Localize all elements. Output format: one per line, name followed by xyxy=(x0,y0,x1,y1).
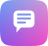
button[interactable]: Messages xyxy=(0,0,48,46)
